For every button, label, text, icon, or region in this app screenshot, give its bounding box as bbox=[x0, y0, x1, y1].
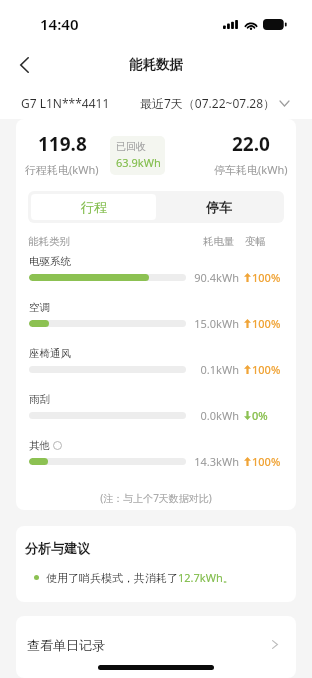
staticText: 0.1kWh bbox=[187, 362, 239, 377]
button[interactable]: 停车 bbox=[156, 194, 281, 220]
staticText: 100% bbox=[252, 270, 281, 285]
staticText: 雨刮 bbox=[29, 393, 50, 406]
staticText: 0% bbox=[252, 408, 268, 423]
staticText: 使用了哨兵模式，共消耗了 bbox=[46, 571, 178, 585]
staticText: 0.0kWh bbox=[187, 408, 239, 423]
staticText: 已回收 bbox=[116, 140, 146, 153]
staticText: 14:40 bbox=[40, 14, 79, 34]
staticText: 电驱系统 bbox=[29, 255, 71, 268]
staticText: 停车耗电(kWh) bbox=[214, 162, 288, 177]
staticText: 100% bbox=[252, 316, 281, 331]
staticText: G7 L1N***4411 bbox=[21, 95, 110, 111]
staticText: 能耗数据 bbox=[129, 56, 183, 73]
staticText: 90.4kWh bbox=[187, 270, 239, 285]
staticText: 停车 bbox=[206, 199, 232, 215]
staticText: 22.0 bbox=[232, 131, 270, 157]
staticText: 座椅通风 bbox=[29, 347, 71, 360]
staticText: 耗电量 bbox=[203, 235, 235, 248]
staticText: 119.8 bbox=[38, 131, 87, 157]
staticText: 行程 bbox=[81, 199, 107, 215]
staticText: 能耗类别 bbox=[28, 235, 70, 248]
staticText: 空调 bbox=[29, 301, 50, 314]
staticText: (注：与上个7天数据对比) bbox=[16, 491, 296, 505]
staticText: 变幅 bbox=[245, 235, 266, 248]
staticText: 查看单日记录 bbox=[27, 637, 105, 653]
staticText: 100% bbox=[252, 454, 281, 469]
staticText: 15.0kWh bbox=[187, 316, 239, 331]
staticText: 14.3kWh bbox=[187, 454, 239, 469]
staticText: 其他 bbox=[29, 439, 50, 452]
button[interactable]: 最近7天（07.22~07.28） bbox=[140, 95, 289, 111]
staticText: 行程耗电(kWh) bbox=[25, 162, 99, 177]
button[interactable]: 行程 bbox=[31, 194, 156, 220]
staticText: 分析与建议 bbox=[25, 540, 90, 556]
staticText: 最近7天（07.22~07.28） bbox=[140, 95, 276, 111]
button[interactable]: 查看单日记录 bbox=[16, 616, 296, 678]
staticText: 63.9kWh bbox=[116, 155, 161, 170]
staticText: 12.7kWh。 bbox=[178, 570, 234, 585]
staticText: 100% bbox=[252, 362, 281, 377]
button[interactable]: Back bbox=[6, 47, 42, 83]
